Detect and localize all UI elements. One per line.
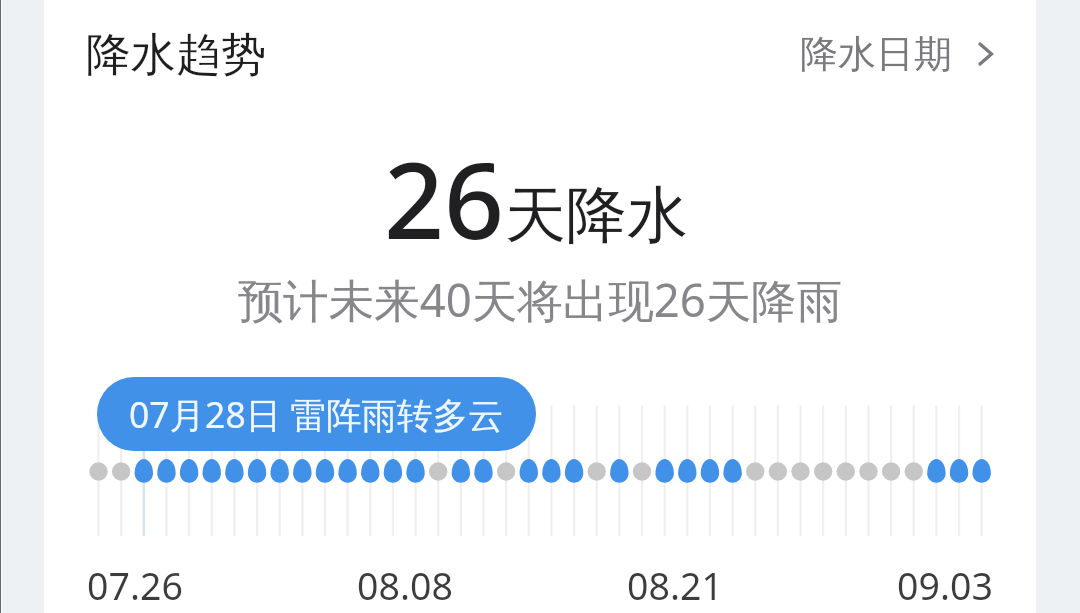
staticText: 07.26: [87, 560, 183, 611]
button[interactable]: Day 38: rain: [924, 452, 947, 514]
staticText: 08.21: [627, 560, 723, 611]
button[interactable]: Day 4: rain: [153, 452, 175, 514]
button[interactable]: Day 34: no rain: [832, 452, 855, 514]
button[interactable]: Day 24: rain: [602, 452, 625, 514]
button[interactable]: Day 27: rain: [671, 452, 694, 514]
button[interactable]: Day 29: rain: [717, 452, 740, 514]
staticText: 降水趋势: [86, 27, 266, 84]
button[interactable]: Day 9: rain: [263, 452, 285, 514]
staticText: 天降水: [505, 177, 688, 254]
button[interactable]: Day 14: rain: [373, 452, 395, 514]
button[interactable]: Day 18: rain: [464, 452, 487, 514]
button[interactable]: Day 22: rain: [556, 452, 579, 514]
staticText: 07月28日 雷阵雨转多云: [129, 390, 504, 438]
button[interactable]: Day 30: no rain: [740, 452, 763, 514]
staticText: 预计未来40天将出现26天降雨: [44, 268, 1036, 330]
staticText: 09.03: [897, 560, 993, 611]
staticText: 26: [384, 127, 505, 270]
button[interactable]: Day 6: rain: [197, 452, 219, 514]
button[interactable]: Day 26: rain: [648, 452, 671, 514]
button[interactable]: Day 20: rain: [510, 452, 533, 514]
button[interactable]: 07月28日 雷阵雨转多云: [97, 377, 536, 451]
button[interactable]: Day 2: no rain: [109, 452, 131, 514]
button[interactable]: Day 3: rain: [131, 452, 153, 514]
button[interactable]: Day 13: rain: [351, 452, 373, 514]
button[interactable]: Day 7: rain: [219, 452, 241, 514]
button[interactable]: Day 19: no rain: [487, 452, 510, 514]
staticText: 降水日期: [800, 30, 952, 78]
button[interactable]: Day 21: rain: [533, 452, 556, 514]
button[interactable]: Day 31: no rain: [763, 452, 786, 514]
button[interactable]: 降水日期: [800, 30, 996, 78]
button[interactable]: Day 10: rain: [285, 452, 307, 514]
button[interactable]: Day 1: no rain: [87, 452, 109, 514]
button[interactable]: Day 11: rain: [307, 452, 329, 514]
button[interactable]: Day 40: rain: [970, 452, 993, 514]
button[interactable]: Day 35: no rain: [855, 452, 878, 514]
button[interactable]: Day 37: no rain: [901, 452, 924, 514]
staticText: 08.08: [357, 560, 453, 611]
button[interactable]: Day 5: rain: [175, 452, 197, 514]
button[interactable]: Day 33: no rain: [809, 452, 832, 514]
other: Open precipitation dates: [978, 31, 996, 77]
button[interactable]: Day 32: no rain: [786, 452, 809, 514]
button[interactable]: Day 17: rain: [441, 452, 464, 514]
button[interactable]: Day 8: rain: [241, 452, 263, 514]
button[interactable]: Day 23: no rain: [579, 452, 602, 514]
button[interactable]: Day 15: rain: [395, 452, 418, 514]
button[interactable]: Day 16: no rain: [418, 452, 441, 514]
button[interactable]: Day 28: rain: [694, 452, 717, 514]
button[interactable]: Day 12: rain: [329, 452, 351, 514]
button[interactable]: Day 39: rain: [947, 452, 970, 514]
button[interactable]: Day 36: no rain: [878, 452, 901, 514]
button[interactable]: Day 25: no rain: [625, 452, 648, 514]
